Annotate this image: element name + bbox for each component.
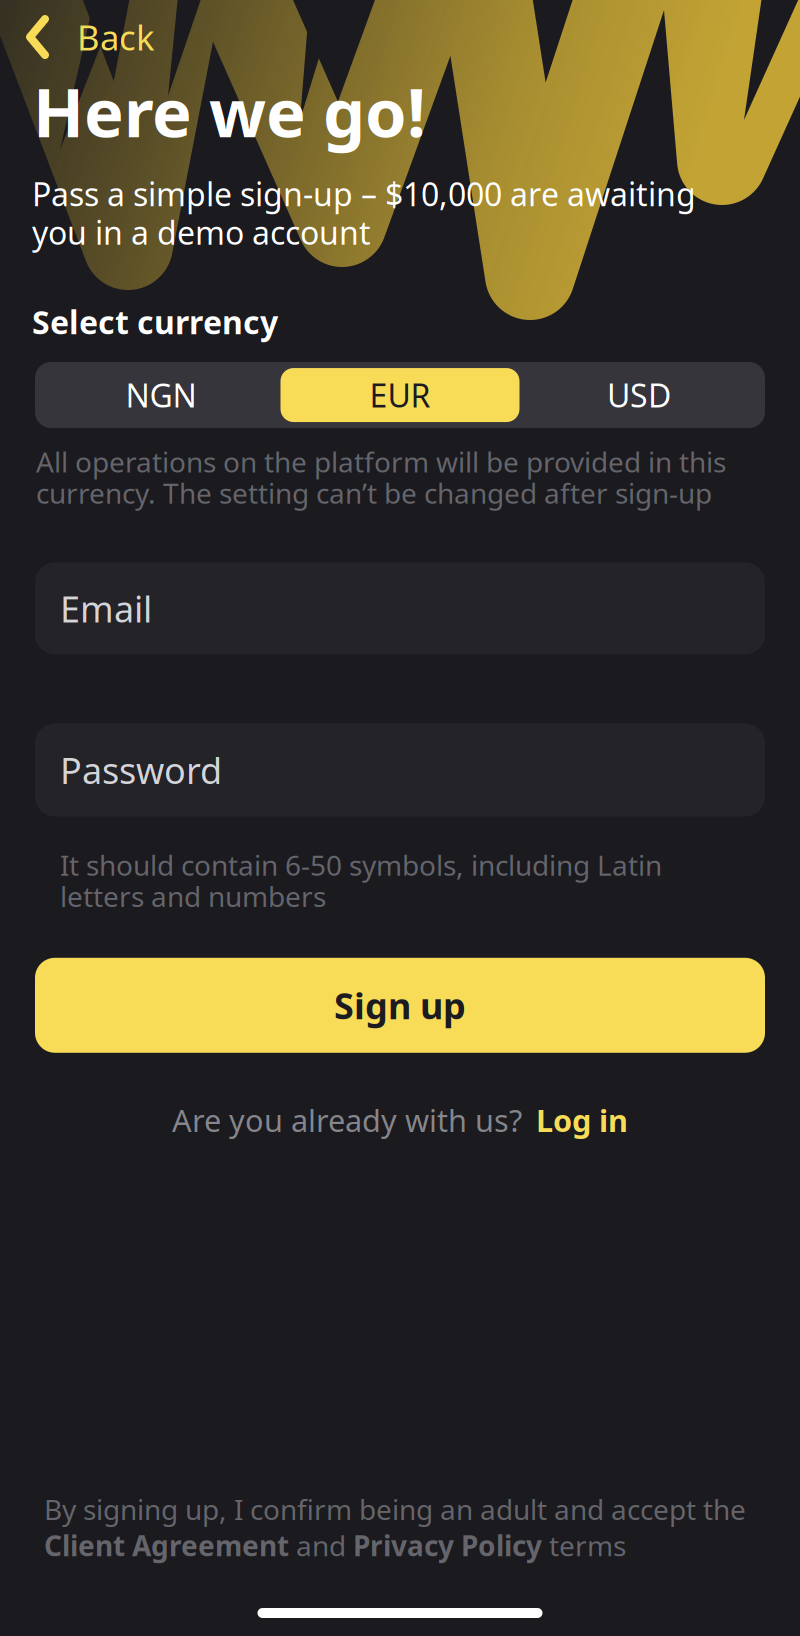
staticText: USD <box>607 374 671 416</box>
staticText: letters and numbers <box>60 878 326 915</box>
button[interactable]: Sign up <box>35 958 765 1053</box>
button[interactable]: NGN <box>41 368 280 422</box>
staticText: Sign up <box>334 981 466 1029</box>
staticText: Privacy Policy <box>353 1527 542 1564</box>
staticText: Are you already with us? <box>172 1100 522 1140</box>
staticText: EUR <box>369 374 430 416</box>
staticText: you in a demo account <box>32 211 371 254</box>
staticText: Client Agreement <box>44 1527 289 1564</box>
button[interactable]: EUR <box>280 368 519 422</box>
staticText: Log in <box>536 1100 628 1140</box>
staticText: All operations on the platform will be p… <box>36 443 726 480</box>
staticText: Pass a simple sign-up – $10,000 are awai… <box>32 173 696 215</box>
staticText: currency. The setting can’t be changed a… <box>36 474 712 511</box>
button[interactable]: Password <box>35 723 765 816</box>
staticText: Email <box>60 584 152 632</box>
staticText: By signing up, I confirm being an adult … <box>44 1491 746 1528</box>
staticText: It should contain 6-50 symbols, includin… <box>60 846 662 884</box>
button[interactable]: USD <box>519 368 758 422</box>
staticText: Password <box>60 746 222 794</box>
button[interactable]: Email <box>35 562 765 654</box>
staticText: Here we go! <box>33 67 426 155</box>
staticText: and <box>289 1527 353 1564</box>
staticText: Back <box>77 14 155 60</box>
button[interactable]: Back <box>0 0 175 60</box>
staticText: terms <box>542 1527 626 1564</box>
button[interactable]: Log in <box>536 1100 628 1140</box>
staticText: Select currency <box>32 301 278 343</box>
staticText: NGN <box>125 374 196 416</box>
